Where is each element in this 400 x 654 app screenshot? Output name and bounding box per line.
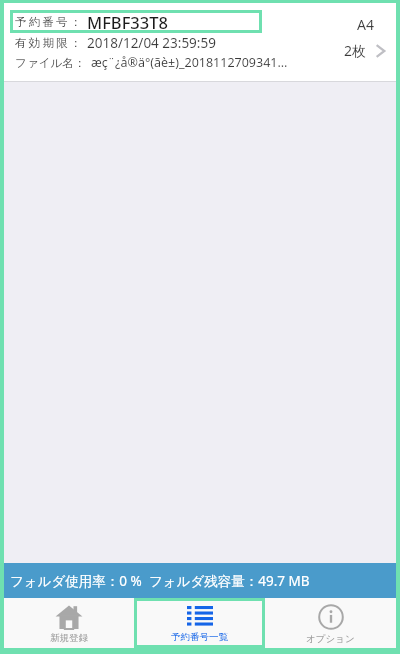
staticText: ファイル名 (15, 56, 74, 70)
staticText: A4 (357, 15, 374, 34)
button[interactable]: 予約番号一覧 (134, 598, 265, 648)
button[interactable]: 新規登録 (4, 598, 134, 648)
staticText: 有効期限 (15, 36, 70, 50)
staticText: 新規登録 (50, 632, 88, 644)
staticText: 2枚 (344, 41, 367, 60)
staticText: オプション (306, 633, 355, 645)
button[interactable]: 予約番号 (4, 3, 396, 82)
staticText: MFBF33T8 (87, 11, 168, 33)
button[interactable]: オプション (265, 598, 396, 648)
staticText: ： (74, 56, 86, 70)
staticText: ： (70, 36, 82, 50)
staticText: フォルダ残容量：49.7 MB (149, 572, 310, 590)
staticText: æç¨¿å®ä°(ãè±)_2018112709341… (91, 54, 288, 71)
staticText: 2018/12/04 23:59:59 (87, 34, 216, 52)
staticText: 予約番号一覧 (171, 631, 228, 643)
staticText: 予約番号 (15, 15, 70, 29)
staticText: フォルダ使用率：0 % (10, 572, 142, 590)
staticText: ： (70, 15, 82, 29)
